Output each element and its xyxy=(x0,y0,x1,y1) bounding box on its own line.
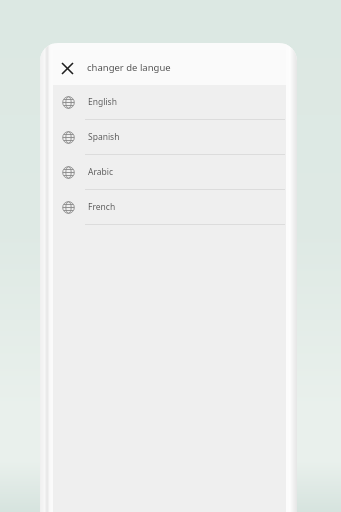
staticText: French xyxy=(88,201,116,213)
button[interactable]: Arabic xyxy=(53,155,286,189)
staticText: Arabic xyxy=(88,166,114,178)
button[interactable]: French xyxy=(53,190,286,224)
staticText: English xyxy=(88,96,117,108)
button[interactable]: Spanish xyxy=(53,120,286,154)
staticText: changer de langue xyxy=(87,61,171,74)
button[interactable]: English xyxy=(53,85,286,119)
staticText: Spanish xyxy=(88,131,120,143)
button[interactable]: Close xyxy=(56,57,78,79)
